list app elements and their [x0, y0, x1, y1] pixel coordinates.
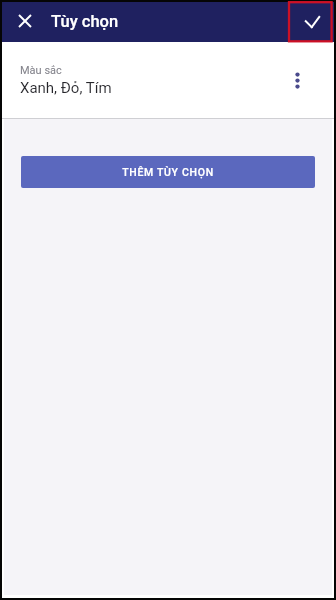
button[interactable]: THÊM TÙY CHỌN [21, 156, 315, 188]
button[interactable]: Done [292, 2, 332, 42]
button[interactable]: More options [277, 60, 317, 100]
button[interactable]: Close [8, 5, 42, 39]
staticText: Màu sắc [20, 64, 62, 77]
staticText: Tùy chọn [51, 12, 119, 31]
staticText: Xanh, Đỏ, Tím [20, 79, 112, 97]
staticText: THÊM TÙY CHỌN [122, 166, 214, 178]
button[interactable]: Màu sắc [2, 42, 334, 118]
